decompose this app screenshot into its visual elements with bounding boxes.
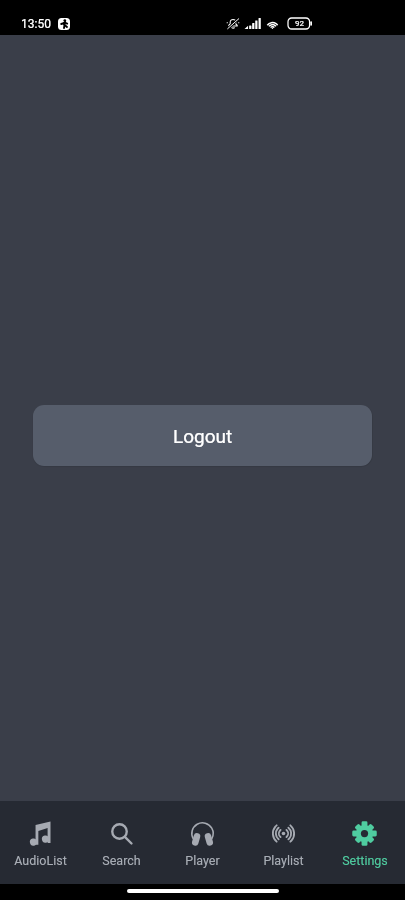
button[interactable]: Playlist	[243, 801, 324, 884]
button[interactable]: AudioList	[0, 801, 81, 884]
staticText: AudioList	[14, 853, 67, 868]
staticText: Playlist	[263, 853, 304, 868]
staticText: Settings	[342, 853, 388, 868]
button[interactable]: Settings	[324, 801, 405, 884]
button[interactable]: Player	[162, 801, 243, 884]
staticText: Search	[102, 853, 141, 868]
button[interactable]: Logout	[33, 405, 372, 466]
button[interactable]: Search	[81, 801, 162, 884]
staticText: 13:50	[21, 17, 51, 31]
staticText: Logout	[173, 425, 233, 447]
staticText: 92	[295, 19, 304, 28]
staticText: Player	[185, 853, 220, 868]
